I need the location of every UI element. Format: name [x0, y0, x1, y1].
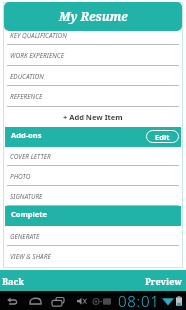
staticText: REFERENCE — [10, 92, 43, 101]
button[interactable]: REFERENCE — [4, 86, 182, 107]
button[interactable]: Preview — [141, 270, 186, 291]
button[interactable]: Edit — [146, 130, 179, 143]
staticText: My Resume — [59, 8, 128, 24]
button[interactable]: KEY QUALIFICATION — [4, 25, 182, 45]
button[interactable]: My Resume — [4, 2, 182, 31]
staticText: KEY QUALIFICATION — [10, 31, 67, 40]
button[interactable]: COVER LETTER — [4, 147, 182, 166]
staticText: PHOTO — [10, 172, 31, 181]
staticText: Preview — [145, 275, 183, 287]
staticText: GENERATE — [10, 232, 40, 241]
staticText: EDUCATION — [10, 72, 44, 81]
staticText: + Add New Item — [63, 112, 123, 122]
button[interactable]: VIEW & SHARE — [4, 246, 182, 266]
staticText: Back — [2, 275, 24, 287]
staticText: Add-ons — [11, 130, 42, 140]
staticText: Complete — [11, 209, 47, 219]
staticText: VIEW & SHARE — [10, 252, 51, 261]
button[interactable]: PHOTO — [4, 166, 182, 186]
staticText: WORK EXPERIENCE — [10, 51, 64, 60]
button[interactable]: EDUCATION — [4, 66, 182, 86]
staticText: COVER LETTER — [10, 152, 51, 161]
button[interactable]: SIGNATURE — [4, 186, 182, 206]
staticText: 08:01 — [118, 291, 160, 310]
staticText: Edit — [155, 132, 170, 142]
button[interactable]: Back — [0, 270, 28, 291]
button[interactable]: WORK EXPERIENCE — [4, 45, 182, 66]
button[interactable]: + Add New Item — [4, 107, 182, 127]
button[interactable]: GENERATE — [4, 226, 182, 246]
staticText: SIGNATURE — [10, 192, 43, 201]
